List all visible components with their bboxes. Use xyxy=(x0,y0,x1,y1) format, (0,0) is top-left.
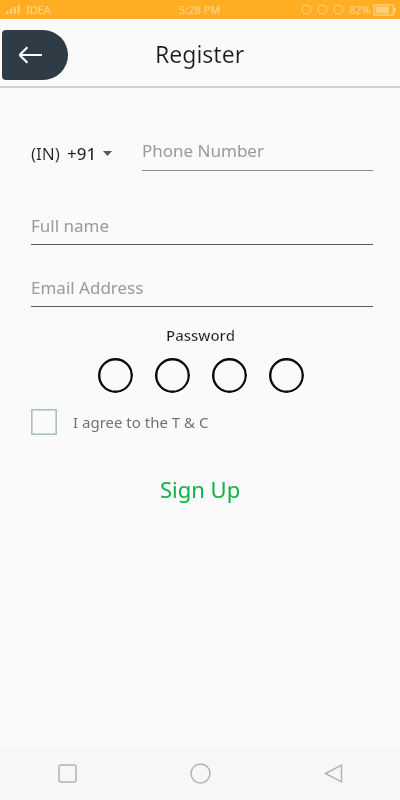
staticText: IDEA xyxy=(26,2,51,17)
button[interactable]: PIN digit 2 xyxy=(154,357,190,393)
button[interactable]: PIN digit 1 xyxy=(97,357,133,393)
button[interactable]: Home xyxy=(134,747,267,800)
button[interactable]: Sign Up xyxy=(144,468,257,510)
staticText: Sign Up xyxy=(160,474,241,504)
staticText: 5:28 PM xyxy=(179,2,221,17)
staticText: Email Address xyxy=(31,276,144,299)
staticText: +91 xyxy=(67,142,97,165)
button[interactable]: I agree to the T & C xyxy=(31,409,209,435)
staticText: 82% xyxy=(349,2,371,17)
staticText: I agree to the T & C xyxy=(73,412,209,432)
button[interactable]: Back xyxy=(2,30,68,80)
button[interactable]: Phone Number xyxy=(142,135,373,171)
button[interactable]: Email Address xyxy=(31,273,373,307)
button[interactable]: Full name xyxy=(31,211,373,245)
staticText: Phone Number xyxy=(142,139,264,162)
staticText: Full name xyxy=(31,214,110,237)
staticText: (IN) xyxy=(31,142,60,165)
button[interactable]: Back xyxy=(267,747,400,800)
button[interactable]: Recents xyxy=(0,747,134,800)
staticText: Password xyxy=(166,325,235,345)
button[interactable]: PIN digit 4 xyxy=(268,357,304,393)
button[interactable]: (IN) xyxy=(31,142,112,165)
button[interactable]: PIN digit 3 xyxy=(211,357,247,393)
staticText: Register xyxy=(155,38,245,69)
